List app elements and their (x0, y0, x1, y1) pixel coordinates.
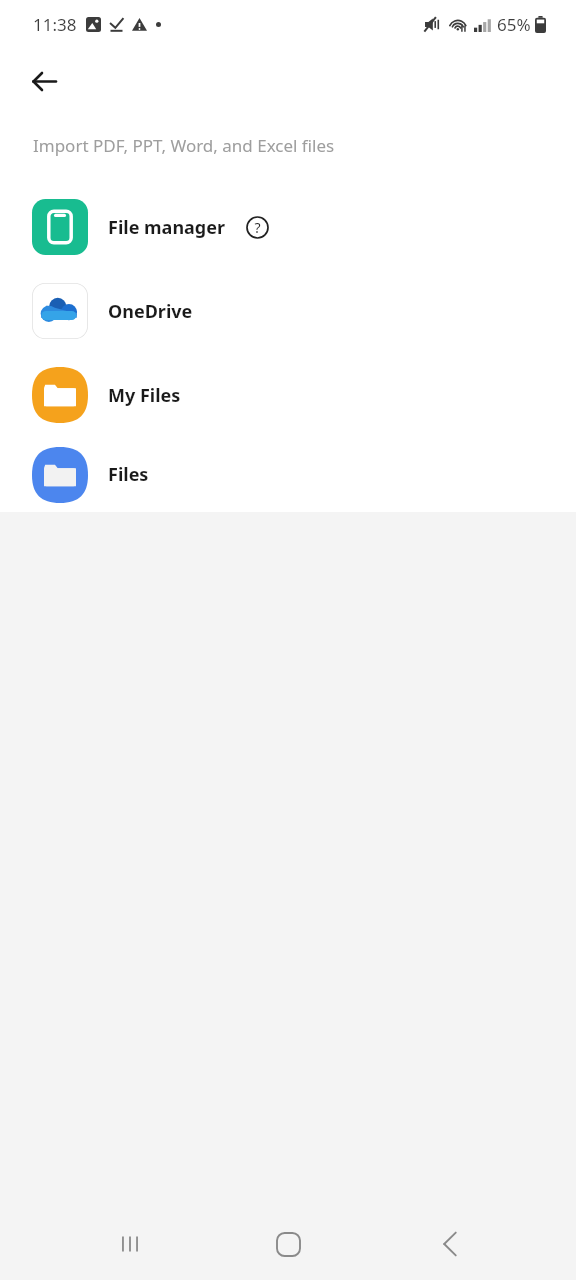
button[interactable]: Back (418, 1212, 482, 1276)
button[interactable]: Help (240, 210, 274, 244)
staticText: OneDrive (108, 299, 193, 324)
staticText: 11:38 (33, 13, 77, 36)
staticText: My Files (108, 383, 181, 408)
staticText: Files (108, 462, 149, 487)
staticText: ? (254, 218, 261, 237)
button[interactable]: My Files (0, 353, 576, 437)
staticText: 65% (497, 13, 531, 36)
staticText: File manager (108, 215, 226, 240)
button[interactable]: Recents (98, 1212, 162, 1276)
button[interactable]: Files (0, 437, 576, 512)
button[interactable]: File manager (0, 185, 576, 269)
button[interactable]: Back (20, 57, 68, 105)
button[interactable]: Home (256, 1212, 320, 1276)
button[interactable]: OneDrive (0, 269, 576, 353)
staticText: Import PDF, PPT, Word, and Excel files (33, 134, 335, 157)
